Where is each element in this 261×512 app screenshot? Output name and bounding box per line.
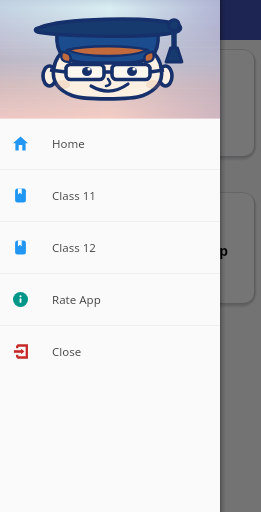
staticText: Class 12 xyxy=(52,240,96,256)
button[interactable]: Class 11 xyxy=(0,170,220,221)
staticText: Close xyxy=(52,344,82,360)
button[interactable]: Download App xyxy=(7,193,254,303)
button[interactable]: Class 12 xyxy=(0,222,220,273)
other: Home xyxy=(13,136,28,151)
button[interactable] xyxy=(7,50,254,156)
staticText: Download App xyxy=(127,241,228,260)
button[interactable]: Close xyxy=(0,326,220,377)
button[interactable]: Home xyxy=(0,118,220,169)
staticText: Rate App xyxy=(52,292,101,308)
button[interactable]: Rate App xyxy=(0,274,220,325)
staticText: Class 11 xyxy=(52,188,96,204)
staticText: Home xyxy=(52,136,85,152)
